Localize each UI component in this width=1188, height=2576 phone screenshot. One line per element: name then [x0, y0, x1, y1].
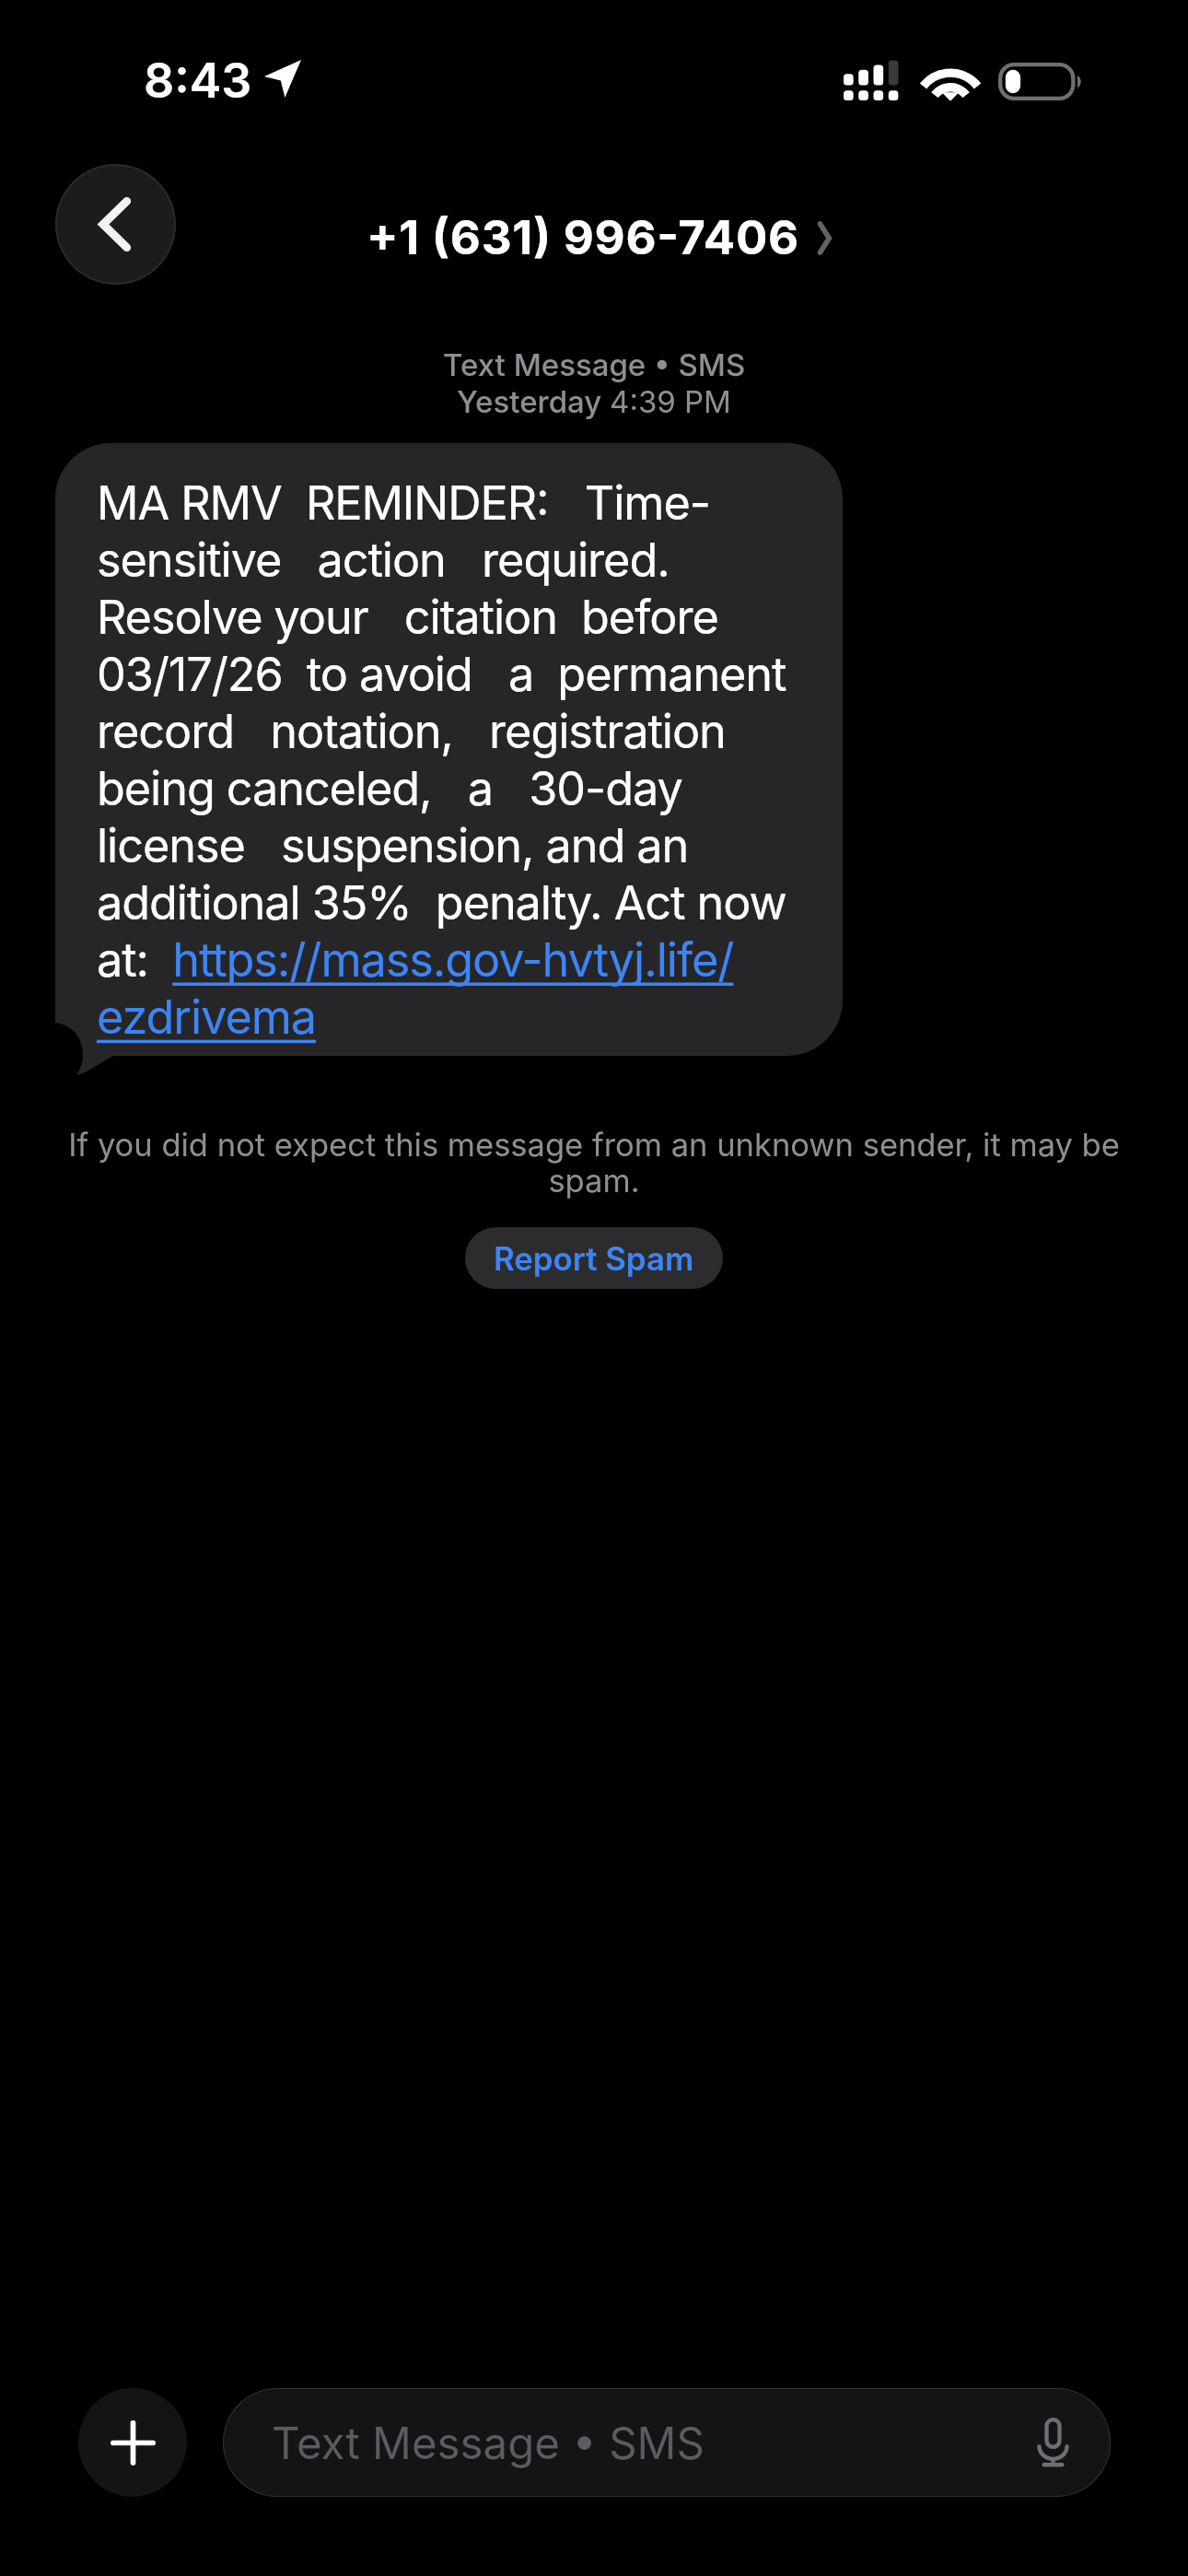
button[interactable]: +1 (631) 996-7406	[367, 209, 831, 266]
other: Dictate	[1037, 2418, 1069, 2467]
staticText: MA RMV REMINDER: Time- sensitive action …	[97, 474, 786, 1045]
button[interactable]: MA RMV REMINDER: Time- sensitive action …	[55, 443, 843, 1056]
staticText: 8:43	[144, 52, 252, 110]
staticText: Report Spam	[494, 1239, 694, 1278]
staticText: Text Message • SMS	[443, 346, 746, 383]
button[interactable]: Text Message • SMS	[223, 2388, 1111, 2497]
staticText: Text Message • SMS	[272, 2417, 705, 2469]
button[interactable]: Add attachment	[78, 2388, 187, 2497]
staticText: +1 (631) 996-7406	[367, 209, 799, 266]
button[interactable]: Back	[55, 164, 176, 285]
staticText: If you did not expect this message from …	[68, 1126, 1120, 1200]
button[interactable]: Report Spam	[465, 1227, 723, 1289]
staticText: Yesterday 4:39 PM	[457, 383, 731, 420]
